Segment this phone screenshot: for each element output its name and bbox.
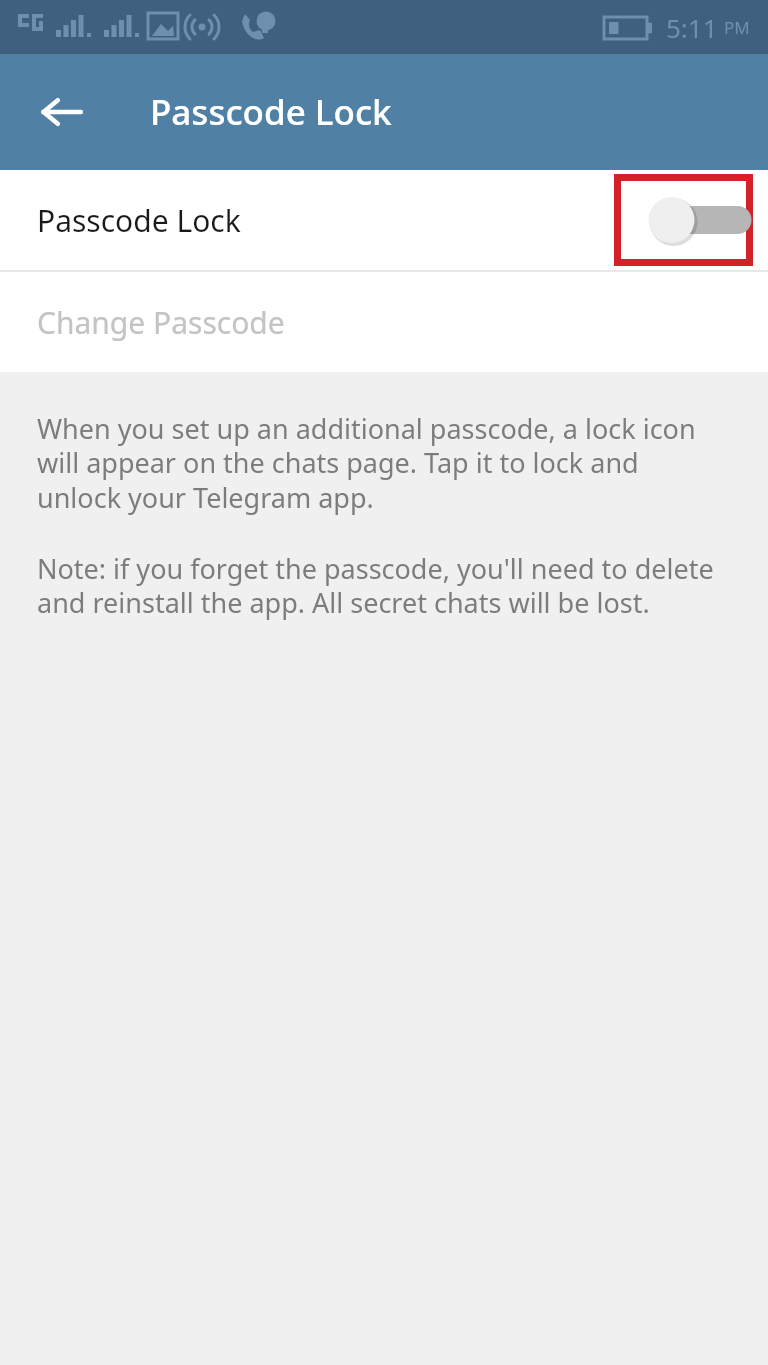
staticText: Change Passcode	[37, 302, 285, 343]
staticText: 5:11	[666, 10, 718, 45]
staticText: Note: if you forget the passcode, you'll…	[37, 550, 728, 621]
button[interactable]: Back	[22, 72, 102, 152]
button[interactable]: Change Passcode	[0, 272, 768, 372]
staticText: When you set up an additional passcode, …	[37, 410, 728, 516]
staticText: Passcode Lock	[37, 200, 241, 241]
staticText: Passcode Lock	[150, 88, 392, 136]
button[interactable]: Passcode Lock	[0, 170, 768, 270]
staticText: PM	[724, 16, 750, 39]
